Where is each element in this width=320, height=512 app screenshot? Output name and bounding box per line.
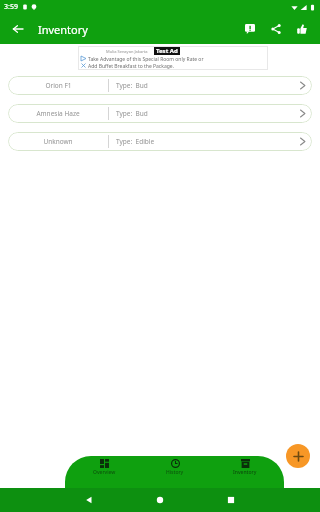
button[interactable]: Amnesia Haze: [8, 104, 312, 123]
staticText: Overview: [93, 469, 116, 476]
button[interactable]: Unknown: [8, 132, 312, 151]
button[interactable]: Add item: [286, 444, 310, 468]
button[interactable]: Back: [8, 19, 28, 39]
button[interactable]: History: [143, 456, 207, 488]
button[interactable]: Like: [292, 19, 312, 39]
staticText: Type: Bud: [116, 81, 148, 90]
button[interactable]: Feedback: [240, 19, 260, 39]
staticText: Mulia Senayan Jakarta: [106, 49, 148, 54]
staticText: Unknown: [43, 137, 73, 146]
staticText: 3:59: [4, 2, 18, 12]
button[interactable]: Orion F1: [8, 76, 312, 95]
staticText: History: [166, 469, 184, 476]
staticText: Amnesia Haze: [36, 109, 80, 118]
staticText: Test Ad: [156, 47, 178, 55]
staticText: Orion F1: [45, 81, 72, 90]
button[interactable]: Overview: [72, 456, 136, 488]
staticText: Take Advantage of this Special Room only…: [88, 56, 204, 63]
staticText: Inventory: [233, 469, 257, 476]
staticText: Type: Edible: [116, 137, 155, 146]
staticText: Add Buffet Breakfast to the Package.: [88, 63, 174, 70]
button[interactable]: Share: [266, 19, 286, 39]
staticText: Inventory: [38, 22, 88, 37]
button[interactable]: Mulia Senayan Jakarta: [78, 46, 268, 70]
staticText: Type: Bud: [116, 109, 148, 118]
button[interactable]: Inventory: [213, 456, 277, 488]
